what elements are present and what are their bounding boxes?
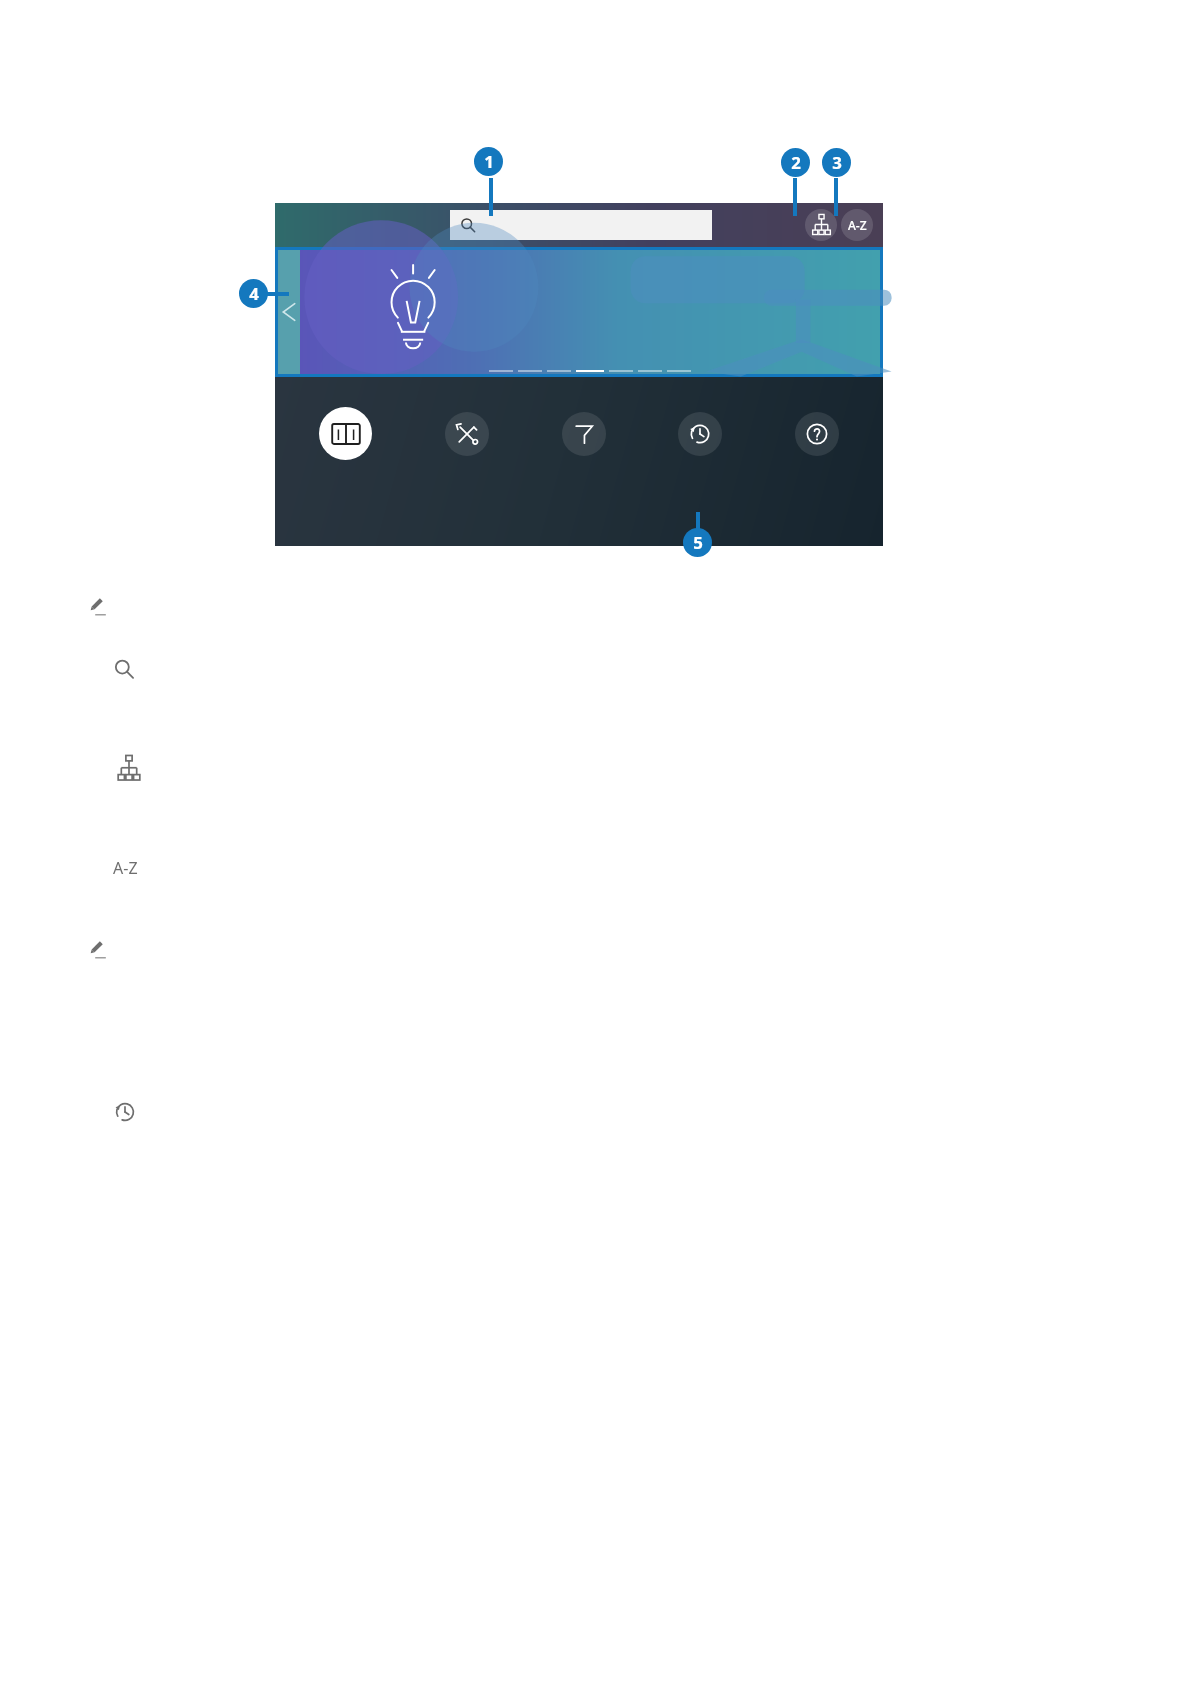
staticText: 2 [791, 151, 801, 174]
button[interactable] [450, 210, 712, 240]
button[interactable]: Previous [278, 250, 300, 374]
staticText: A-Z [848, 217, 867, 233]
staticText: 5 [693, 531, 703, 554]
staticText: 3 [832, 151, 842, 174]
button[interactable]: A-Z [841, 209, 873, 241]
button[interactable]: Filter [562, 412, 606, 456]
button[interactable]: Help [795, 412, 839, 456]
button[interactable]: Tools [445, 412, 489, 456]
staticText: 4 [249, 282, 259, 305]
staticText: A-Z [113, 857, 138, 879]
button[interactable]: e-Manual [319, 407, 372, 460]
button[interactable]: Sitemap [805, 209, 837, 241]
staticText: 1 [484, 150, 494, 173]
button[interactable]: History [678, 412, 722, 456]
